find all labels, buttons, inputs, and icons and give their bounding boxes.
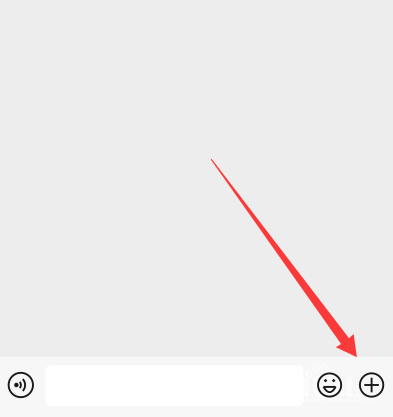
button[interactable]: Emoji <box>310 359 350 411</box>
button[interactable]: Voice message <box>0 359 42 411</box>
button[interactable]: More <box>352 359 392 411</box>
